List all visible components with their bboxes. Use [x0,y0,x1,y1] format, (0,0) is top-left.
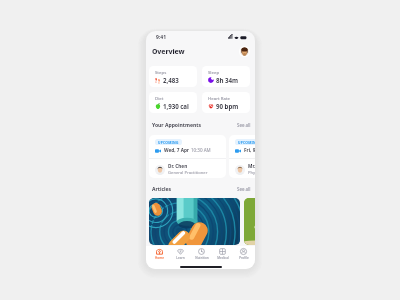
button[interactable] [244,198,255,245]
staticText: Home [155,256,164,260]
button[interactable]: Profile [239,46,250,57]
staticText: Learn [176,256,185,260]
staticText: 9:41 [156,34,166,41]
staticText: 10:30 AM [191,147,211,153]
staticText: UPCOMING [158,140,179,144]
button[interactable]: Medical [212,246,233,262]
staticText: Physiotherapist [248,170,255,176]
staticText: Mr. Hall [248,163,255,169]
staticText: Heart Rate [208,95,231,101]
staticText: 2,483 [163,76,179,84]
staticText: General Practitioner [168,170,208,176]
staticText: Your Appointments [152,122,201,129]
staticText: Diet [155,95,164,101]
staticText: Medical [217,256,229,260]
staticText: UPCOMING [238,140,255,144]
button[interactable]: Home [148,246,170,262]
button[interactable]: UPCOMING [149,135,226,178]
button[interactable]: See all [237,186,251,192]
staticText: Profile [239,256,249,260]
staticText: See all [237,186,251,192]
button[interactable]: UPCOMING [229,135,255,178]
button[interactable]: Profile [233,246,254,262]
button[interactable]: Heart Rate [202,92,250,113]
staticText: Nutrition [195,256,209,260]
button[interactable]: Sleep [202,66,250,87]
button[interactable]: See all [237,122,251,128]
button[interactable]: Diet [149,92,197,113]
button[interactable] [149,198,240,245]
staticText: Overview [152,47,185,56]
staticText: Dr. Chen [168,163,188,169]
button[interactable]: Learn [170,246,191,262]
button[interactable]: Steps [149,66,197,87]
staticText: Wed, 7 Apr [164,147,189,153]
staticText: See all [237,122,251,128]
staticText: Steps [155,69,167,75]
staticText: Fri, 9 Apr [244,147,255,153]
staticText: 1,930 cal [163,102,189,110]
staticText: 8h 34m [216,76,238,84]
staticText: Articles [152,186,172,193]
staticText: Sleep [208,69,220,75]
button[interactable]: Nutrition [191,246,212,262]
staticText: 90 bpm [216,102,239,110]
